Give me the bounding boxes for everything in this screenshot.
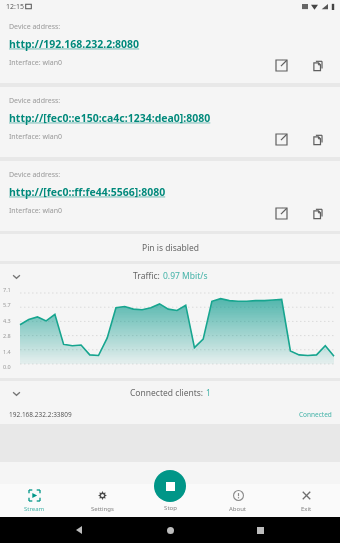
staticText: 0.0 [3,363,11,370]
button[interactable]: 192.168.232.2:33809 [0,404,340,424]
button[interactable]: Back [70,520,90,540]
staticText: 0.97 Mbit/s [163,270,208,282]
button[interactable]: Home [160,520,180,540]
staticText: 1.4 [3,348,11,355]
button[interactable]: Open in browser [271,55,291,75]
button[interactable]: Stop [154,470,186,502]
button[interactable]: http://192.168.232.2:8080 [9,37,140,51]
button[interactable]: http://[fec0::ff:fe44:5566]:8080 [9,185,166,199]
staticText: About [229,505,247,513]
button[interactable]: Exit [272,484,340,517]
button[interactable]: Open in browser [271,129,291,149]
staticText: Traffic: [133,270,163,282]
button[interactable]: Connected clients: [0,381,340,404]
staticText: 1 [206,387,211,399]
staticText: Settings [91,505,114,513]
staticText: 4.3 [3,317,11,324]
button[interactable]: About [204,484,272,517]
staticText: 5.7 [3,301,11,308]
button[interactable]: http://[fec0::e150:ca4c:1234:dea0]:8080 [9,111,211,125]
staticText: Connected [299,410,332,419]
staticText: Stop [164,504,177,512]
button[interactable]: Settings [68,484,136,517]
button[interactable]: Traffic: [0,264,340,288]
button[interactable]: Stream [0,484,68,517]
staticText: Stream [24,505,45,513]
button[interactable]: Copy address [308,203,328,223]
staticText: 192.168.232.2:33809 [9,410,72,419]
staticText: 2.8 [3,332,11,339]
button[interactable]: Copy address [308,129,328,149]
staticText: Pin is disabled [142,242,199,254]
staticText: Exit [301,505,312,513]
button[interactable]: Recents [250,520,270,540]
button[interactable]: Open in browser [271,203,291,223]
staticText: 12:15 [6,2,24,12]
button[interactable]: Copy address [308,55,328,75]
button[interactable]: Pin is disabled [0,234,340,261]
staticText: Interface: wlan0 [9,58,62,68]
staticText: 7.1 [3,286,11,293]
staticText: Interface: wlan0 [9,206,62,216]
staticText: Device address: [9,22,61,32]
staticText: Device address: [9,170,61,180]
staticText: Device address: [9,96,61,106]
staticText: Interface: wlan0 [9,132,62,142]
staticText: Connected clients: [130,387,206,399]
